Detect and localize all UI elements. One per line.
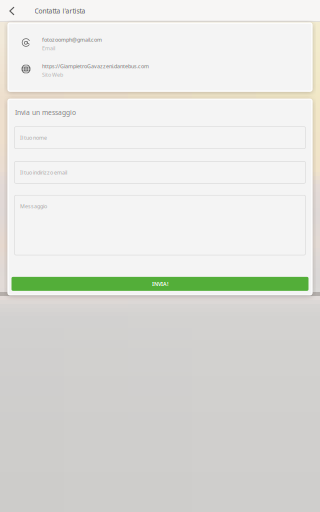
button[interactable]: Il tuo nome: [14, 127, 305, 149]
staticText: Contatta l'artista: [34, 7, 85, 15]
button[interactable]: Messaggio: [14, 195, 305, 255]
staticText: Email: [42, 45, 55, 52]
staticText: fotozoomph@gmail.com: [42, 36, 102, 43]
staticText: Sito Web: [42, 71, 63, 78]
staticText: Messaggio: [20, 203, 47, 210]
staticText: INVIA!: [152, 280, 168, 287]
staticText: Invia un messaggio: [15, 108, 76, 117]
staticText: Il tuo indirizzo email: [20, 169, 67, 176]
button[interactable]: https://GiampietroGavazzeni.dantebus.com: [8, 57, 312, 84]
staticText: https://GiampietroGavazzeni.dantebus.com: [42, 62, 149, 70]
button[interactable]: fotozoomph@gmail.com: [8, 31, 312, 57]
staticText: Il tuo nome: [20, 134, 47, 141]
button[interactable]: Il tuo indirizzo email: [14, 161, 305, 183]
button[interactable]: INVIA!: [11, 277, 308, 291]
button[interactable]: Back: [0, 0, 24, 22]
